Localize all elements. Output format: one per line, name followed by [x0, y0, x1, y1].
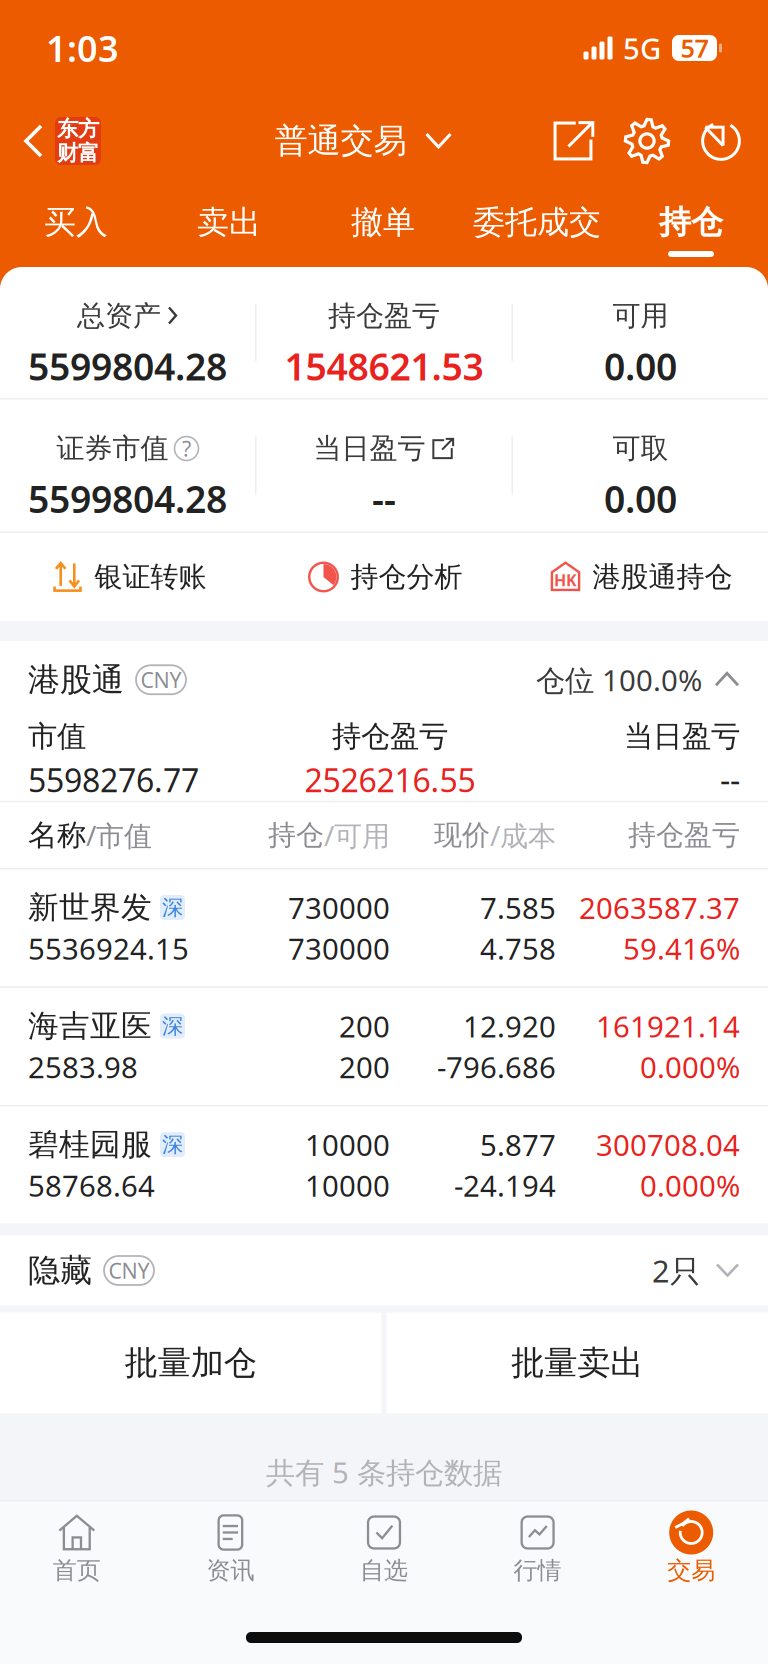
staticText: 买入 — [44, 203, 108, 242]
staticText: 730000 — [288, 888, 390, 927]
staticText: 港股通 — [28, 660, 124, 699]
staticText: ? — [182, 434, 191, 463]
staticText: 财富 — [57, 140, 99, 166]
staticText: 2526216.55 — [304, 758, 475, 801]
staticText: 碧桂园服 — [28, 1126, 152, 1163]
staticText: 5599804.28 — [28, 474, 227, 523]
staticText: 730000 — [288, 929, 390, 968]
button[interactable]: 隐藏 — [0, 1235, 768, 1305]
staticText: 0.00 — [604, 341, 677, 391]
button[interactable]: 仓位 100.0% — [536, 660, 740, 699]
button[interactable]: 自选 — [307, 1501, 461, 1601]
staticText: 当日盈亏 — [313, 431, 425, 466]
button[interactable]: 持仓分析 — [256, 532, 512, 622]
staticText: 交易 — [667, 1556, 715, 1585]
button[interactable]: 海吉亚医 — [0, 988, 768, 1105]
staticText: 银证转账 — [94, 560, 206, 594]
button[interactable]: 买入 — [0, 186, 152, 267]
staticText: 200 — [339, 1006, 390, 1045]
staticText: 持仓 — [268, 818, 324, 852]
staticText: 0.00 — [604, 474, 677, 523]
button[interactable]: 首页 — [0, 1501, 154, 1601]
staticText: /成本 — [490, 817, 556, 854]
staticText: 深 — [162, 1131, 183, 1158]
staticText: 东方 — [57, 116, 99, 142]
button[interactable]: 委托成交 — [460, 186, 614, 267]
staticText: 仓位 100.0% — [536, 660, 702, 699]
staticText: 161921.14 — [596, 1006, 740, 1045]
button[interactable]: Share — [550, 118, 596, 164]
staticText: 持仓 — [659, 203, 723, 242]
staticText: 5598276.77 — [28, 758, 199, 801]
staticText: 5536924.15 — [28, 929, 189, 968]
staticText: HK — [554, 569, 577, 591]
button[interactable]: 持仓 — [614, 186, 768, 267]
staticText: 批量加仓 — [125, 1342, 257, 1383]
button[interactable]: 东方 — [0, 96, 101, 186]
staticText: 资讯 — [206, 1556, 254, 1585]
staticText: 共有 5 条持仓数据 — [266, 1452, 502, 1491]
staticText: -24.194 — [454, 1166, 556, 1205]
staticText: 5.877 — [480, 1125, 556, 1164]
staticText: 深 — [162, 894, 183, 921]
staticText: 10000 — [305, 1166, 390, 1205]
staticText: 新世界发 — [28, 889, 152, 926]
staticText: 名称 — [28, 817, 86, 853]
staticText: -- — [372, 474, 396, 523]
staticText: 10000 — [305, 1125, 390, 1164]
staticText: 港股通持仓 — [592, 560, 732, 594]
button[interactable]: 新世界发 — [0, 869, 768, 986]
staticText: 持仓盈亏 — [628, 818, 740, 852]
staticText: /市值 — [86, 817, 152, 854]
button[interactable]: 批量加仓 — [0, 1312, 381, 1413]
staticText: 59.416% — [623, 929, 740, 968]
staticText: 自选 — [360, 1556, 408, 1585]
button[interactable]: 银证转账 — [0, 532, 256, 622]
staticText: 58768.64 — [28, 1166, 155, 1205]
staticText: 2只 — [652, 1250, 701, 1291]
staticText: CNY — [108, 1256, 149, 1285]
staticText: 批量卖出 — [511, 1342, 643, 1383]
button[interactable]: 卖出 — [152, 186, 306, 267]
staticText: 持仓盈亏 — [332, 718, 448, 754]
staticText: 证券市值 — [56, 431, 168, 466]
button[interactable]: 交易 — [614, 1501, 768, 1601]
staticText: 2583.98 — [28, 1047, 138, 1086]
staticText: 首页 — [53, 1556, 101, 1585]
staticText: 海吉亚医 — [28, 1007, 152, 1045]
staticText: 持仓分析 — [350, 560, 462, 594]
button[interactable]: 普通交易 — [274, 96, 452, 186]
staticText: 现价 — [434, 818, 490, 852]
staticText: /可用 — [324, 817, 390, 854]
staticText: 普通交易 — [274, 120, 406, 161]
button[interactable]: 撤单 — [306, 186, 460, 267]
staticText: 隐藏 — [28, 1251, 92, 1290]
staticText: 0.000% — [640, 1047, 740, 1086]
staticText: 当日盈亏 — [624, 718, 740, 754]
button[interactable]: Settings — [624, 118, 670, 164]
staticText: 行情 — [514, 1556, 562, 1585]
staticText: 市值 — [28, 718, 86, 754]
staticText: 1548621.53 — [284, 341, 483, 391]
button[interactable]: 行情 — [461, 1501, 614, 1601]
staticText: 5G — [623, 28, 661, 67]
staticText: 可用 — [612, 299, 668, 333]
staticText: -796.686 — [437, 1047, 556, 1086]
button[interactable]: 资讯 — [154, 1501, 307, 1601]
staticText: 2063587.37 — [579, 888, 740, 927]
staticText: 12.920 — [463, 1006, 556, 1045]
staticText: 7.585 — [480, 888, 556, 927]
staticText: 可取 — [612, 431, 668, 466]
staticText: 总资产 — [77, 299, 161, 333]
button[interactable]: 批量卖出 — [386, 1312, 768, 1413]
staticText: 57 — [680, 31, 708, 65]
staticText: 撤单 — [351, 203, 415, 242]
staticText: CNY — [140, 666, 181, 694]
button[interactable]: Refresh — [698, 118, 744, 164]
staticText: 0.000% — [640, 1166, 740, 1205]
button[interactable]: HK — [512, 532, 768, 622]
button[interactable]: 碧桂园服 — [0, 1106, 768, 1223]
staticText: 持仓盈亏 — [328, 299, 440, 333]
staticText: 卖出 — [197, 203, 261, 242]
staticText: 深 — [162, 1013, 183, 1039]
